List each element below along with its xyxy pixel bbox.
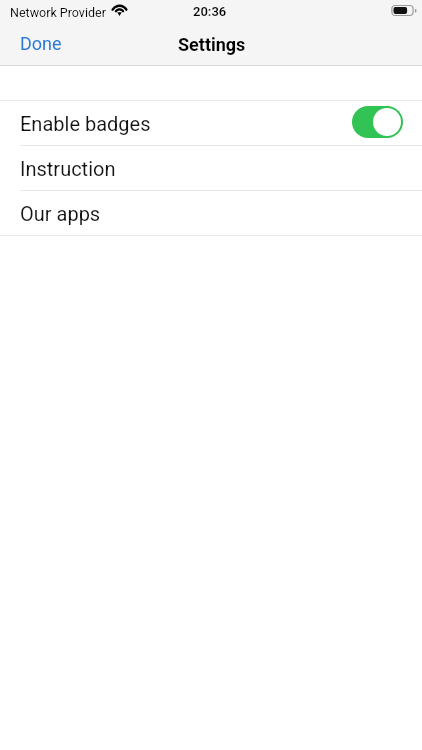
button[interactable]: Enable badges: [0, 101, 422, 145]
staticText: Network Provider: [10, 5, 106, 20]
staticText: 20:36: [193, 4, 227, 19]
staticText: Settings: [178, 34, 246, 55]
button[interactable]: Done: [0, 24, 78, 65]
staticText: Instruction: [20, 157, 116, 180]
staticText: Done: [20, 33, 62, 54]
button[interactable]: Instruction: [0, 146, 422, 190]
staticText: Enable badges: [20, 112, 151, 135]
staticText: Our apps: [20, 202, 101, 225]
button[interactable]: Enable badges toggle: [352, 106, 403, 138]
button[interactable]: Our apps: [0, 191, 422, 235]
